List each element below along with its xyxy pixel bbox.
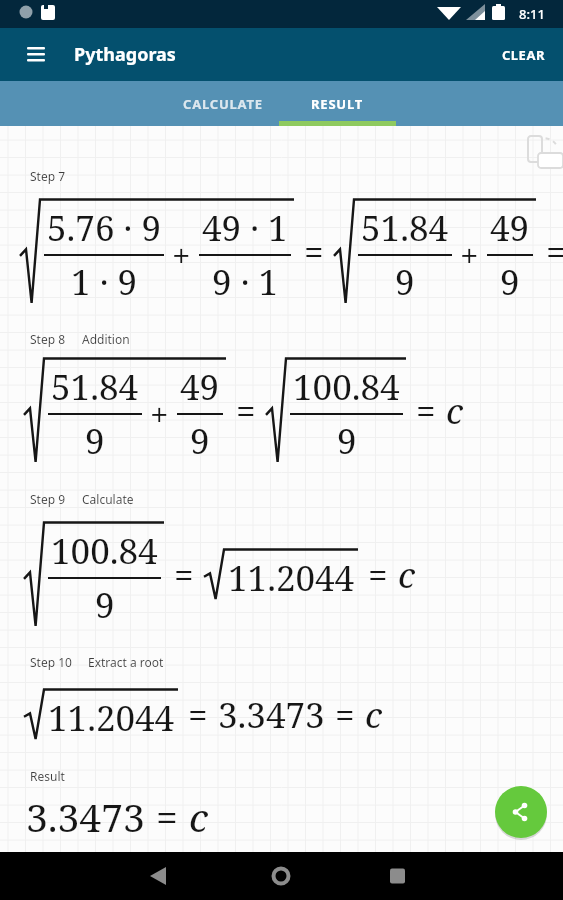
staticText: 9 xyxy=(95,581,115,629)
staticText: 9 xyxy=(190,417,210,465)
staticText: Step 9 xyxy=(30,491,66,507)
staticText: 9 xyxy=(395,258,415,306)
button[interactable] xyxy=(18,37,54,73)
staticText: = xyxy=(236,387,256,435)
staticText: Result xyxy=(30,768,65,784)
staticText: 9 · 1 xyxy=(212,258,279,306)
staticText: = xyxy=(416,387,436,435)
staticText: 51.84 xyxy=(51,363,139,411)
staticText: + xyxy=(172,233,191,278)
button[interactable] xyxy=(495,786,547,838)
staticText: 49 xyxy=(180,363,220,411)
staticText: Extract a root xyxy=(88,654,164,670)
staticText: 9 xyxy=(500,258,520,306)
staticText: c xyxy=(398,551,416,599)
staticText: 49 xyxy=(490,204,530,252)
staticText: = xyxy=(368,551,388,599)
staticText: = xyxy=(156,790,178,843)
button[interactable]: CALCULATE xyxy=(167,81,279,126)
staticText: Step 7 xyxy=(30,168,66,184)
staticText: Pythagoras xyxy=(74,42,176,67)
staticText: + xyxy=(150,392,169,437)
staticText: 100.84 xyxy=(293,363,400,411)
staticText: 11.2044 xyxy=(48,694,175,742)
staticText: Step 8 xyxy=(30,331,66,347)
staticText: Addition xyxy=(82,331,130,347)
staticText: = xyxy=(335,691,355,739)
staticText: 9 xyxy=(337,417,357,465)
button[interactable]: CLEAR xyxy=(494,38,553,72)
staticText: 5.76 · 9 xyxy=(47,204,161,252)
staticText: 100.84 xyxy=(51,527,158,575)
staticText: 49 · 1 xyxy=(202,204,288,252)
staticText: 51.84 xyxy=(361,204,449,252)
staticText: = xyxy=(188,691,208,739)
staticText: Calculate xyxy=(82,491,134,507)
staticText: = xyxy=(174,551,194,599)
staticText: = xyxy=(546,228,563,276)
staticText: CALCULATE xyxy=(183,95,263,113)
staticText: c xyxy=(189,790,208,843)
button[interactable] xyxy=(515,132,555,172)
staticText: 11.2044 xyxy=(228,554,355,602)
staticText: Step 10 xyxy=(30,654,72,670)
staticText: = xyxy=(304,228,324,276)
button[interactable]: RESULT xyxy=(279,81,396,126)
staticText: 3.3473 xyxy=(218,691,325,739)
staticText: RESULT xyxy=(311,95,364,113)
staticText: 1 · 9 xyxy=(71,258,138,306)
staticText: + xyxy=(460,233,479,278)
button[interactable] xyxy=(187,852,375,900)
staticText: c xyxy=(446,387,464,435)
staticText: CLEAR xyxy=(502,46,545,64)
button[interactable] xyxy=(375,852,563,900)
staticText: 9 xyxy=(85,417,105,465)
staticText: 3.3473 xyxy=(26,790,145,843)
staticText: 8:11 xyxy=(519,5,545,23)
staticText: c xyxy=(365,691,383,739)
button[interactable] xyxy=(0,852,187,900)
